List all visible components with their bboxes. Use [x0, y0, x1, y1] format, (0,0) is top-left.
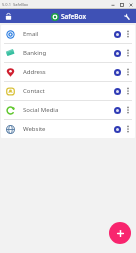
button[interactable]: Close [128, 2, 134, 8]
button[interactable]: Lock [3, 11, 14, 22]
button[interactable]: Settings [122, 11, 133, 22]
button[interactable]: Email [1, 25, 135, 43]
button[interactable]: More options for Social Media [124, 102, 132, 118]
button[interactable]: Minimize [110, 2, 116, 8]
button[interactable]: Social Media [1, 101, 135, 119]
button[interactable]: More options for Address [124, 64, 132, 80]
staticText: Address [23, 68, 114, 76]
staticText: Banking [23, 49, 114, 57]
button[interactable]: More options for Website [124, 121, 132, 137]
button[interactable]: More options for Email [124, 26, 132, 42]
button[interactable]: More options for Contact [124, 83, 132, 99]
button[interactable]: Banking [1, 44, 135, 62]
staticText: Email [23, 30, 114, 38]
staticText: Social Media [23, 106, 114, 114]
button[interactable]: Website [1, 120, 135, 138]
button[interactable]: Maximize [119, 2, 125, 8]
button[interactable]: Add entry [109, 222, 131, 244]
staticText: SafeBox [61, 12, 86, 21]
staticText: 5.0.1 SafeBox [2, 2, 29, 7]
button[interactable]: More options for Banking [124, 45, 132, 61]
button[interactable]: Contact [1, 82, 135, 100]
button[interactable]: Address [1, 63, 135, 81]
staticText: Contact [23, 87, 114, 95]
staticText: Website [23, 125, 114, 133]
